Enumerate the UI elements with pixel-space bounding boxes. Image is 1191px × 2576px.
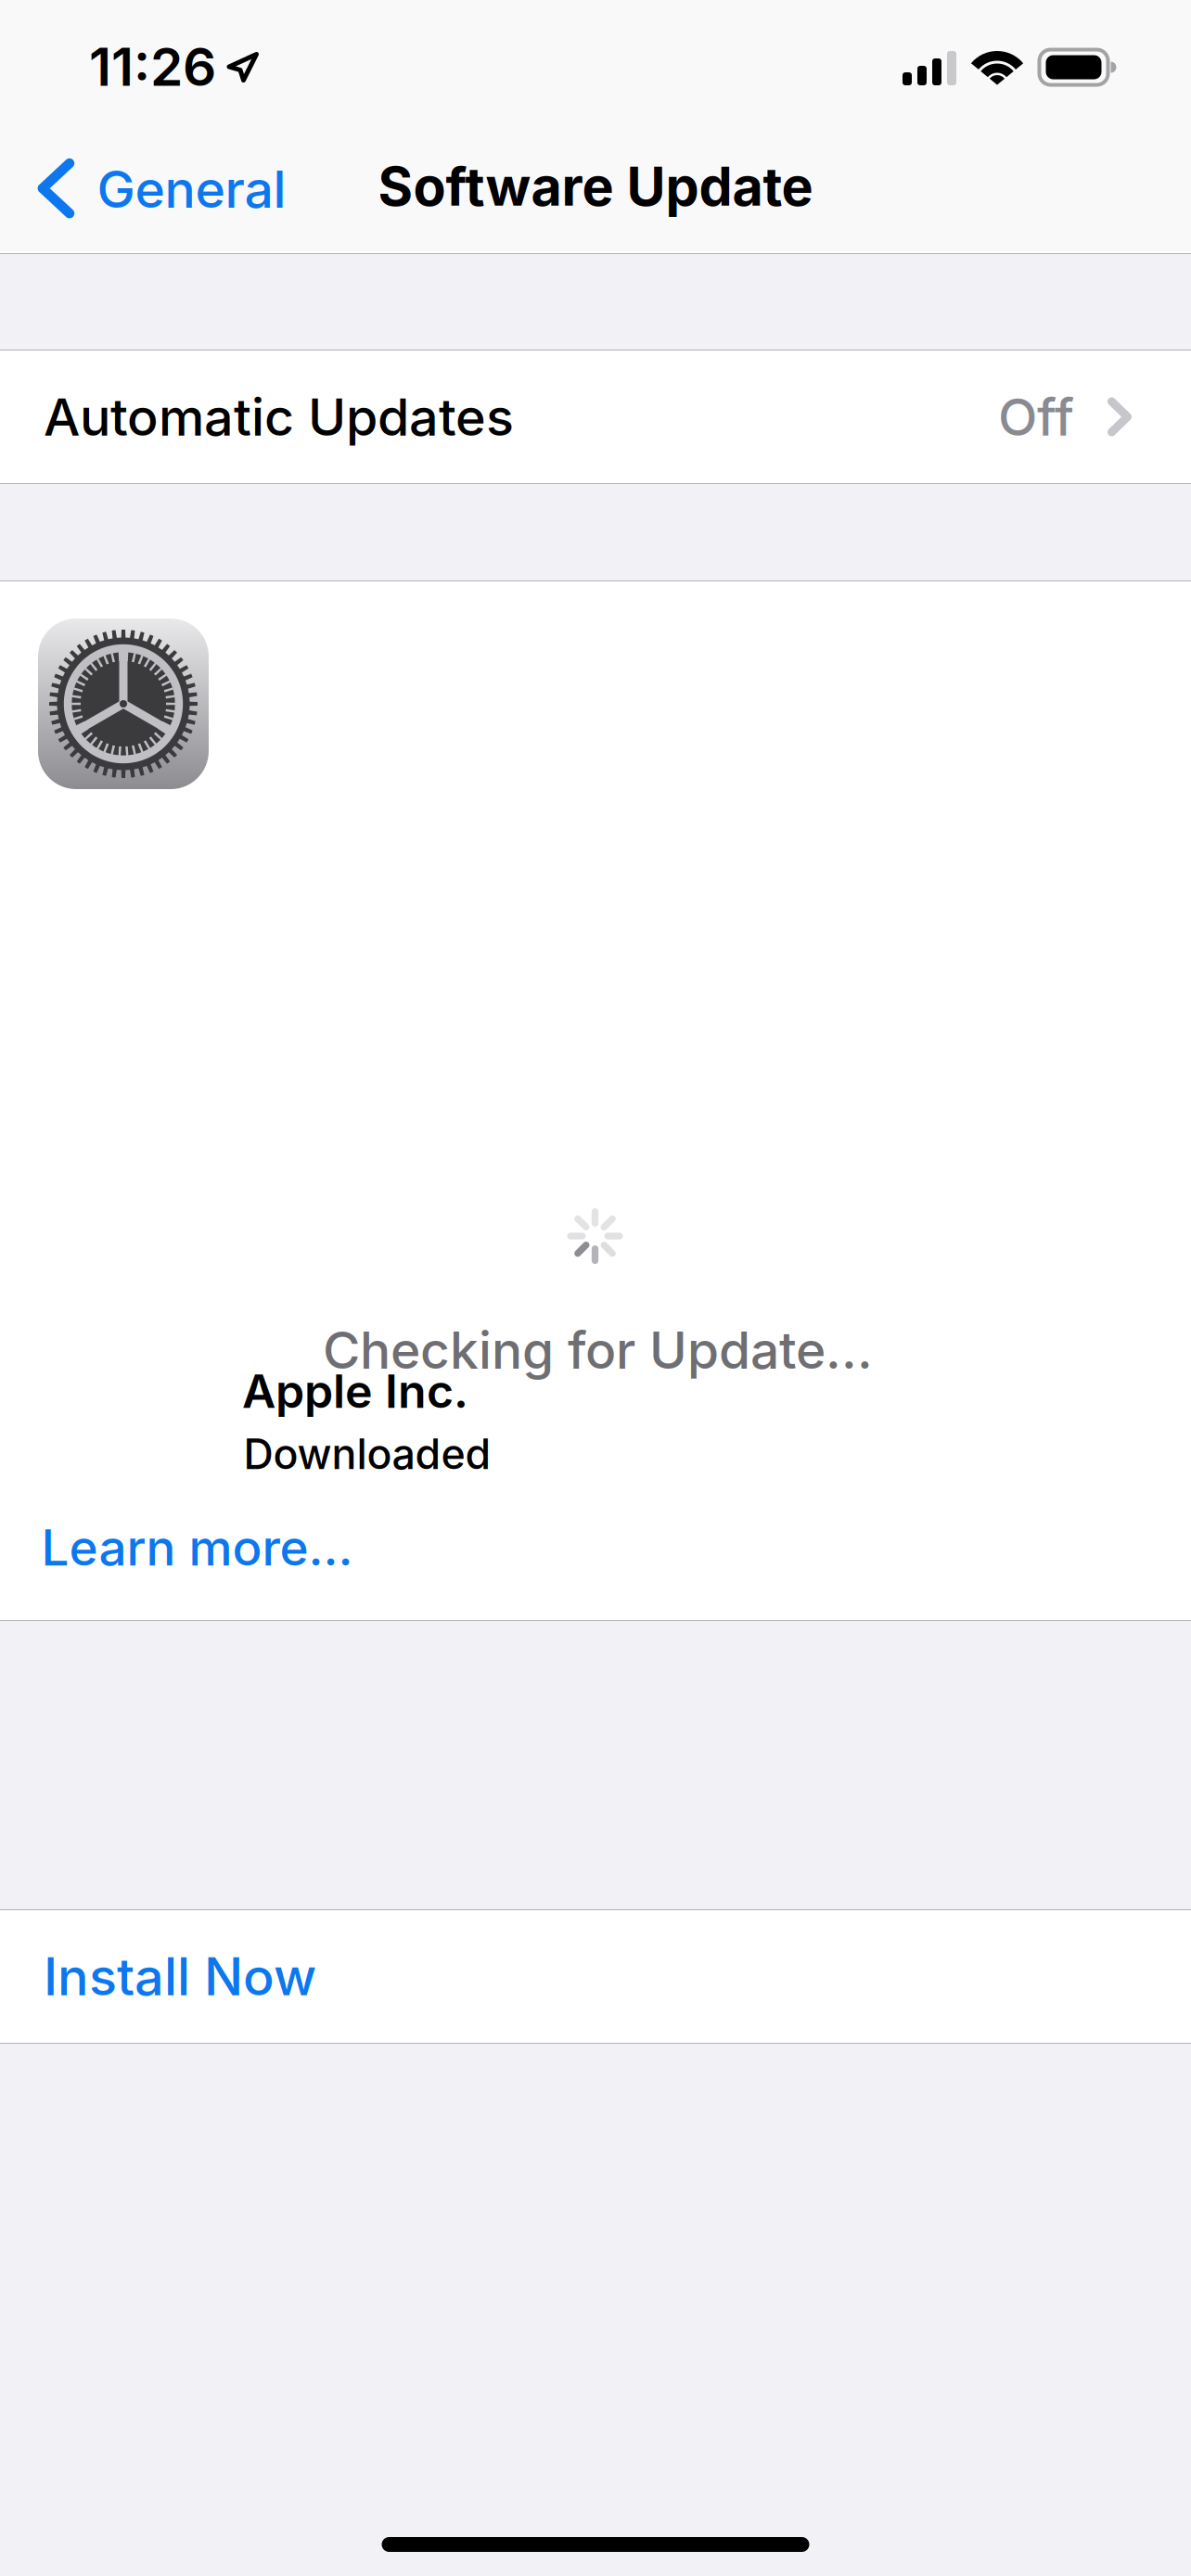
staticText: Software Update bbox=[378, 154, 813, 219]
staticText: Downloaded bbox=[243, 1429, 491, 1479]
staticText: Learn more... bbox=[41, 1518, 353, 1577]
staticText: General bbox=[97, 158, 286, 220]
staticText: Checking for Update... bbox=[323, 1319, 873, 1381]
button[interactable]: Install Now bbox=[0, 1910, 1191, 2043]
staticText: Apple Inc. bbox=[242, 1363, 468, 1419]
button[interactable]: General bbox=[38, 139, 305, 238]
staticText: Install Now bbox=[44, 1945, 316, 2008]
button[interactable]: Learn more... bbox=[32, 1509, 362, 1587]
staticText: Off bbox=[998, 386, 1074, 448]
staticText: 11:26 bbox=[89, 35, 216, 99]
button[interactable]: Automatic Updates bbox=[0, 351, 1191, 483]
staticText: Automatic Updates bbox=[44, 386, 514, 448]
